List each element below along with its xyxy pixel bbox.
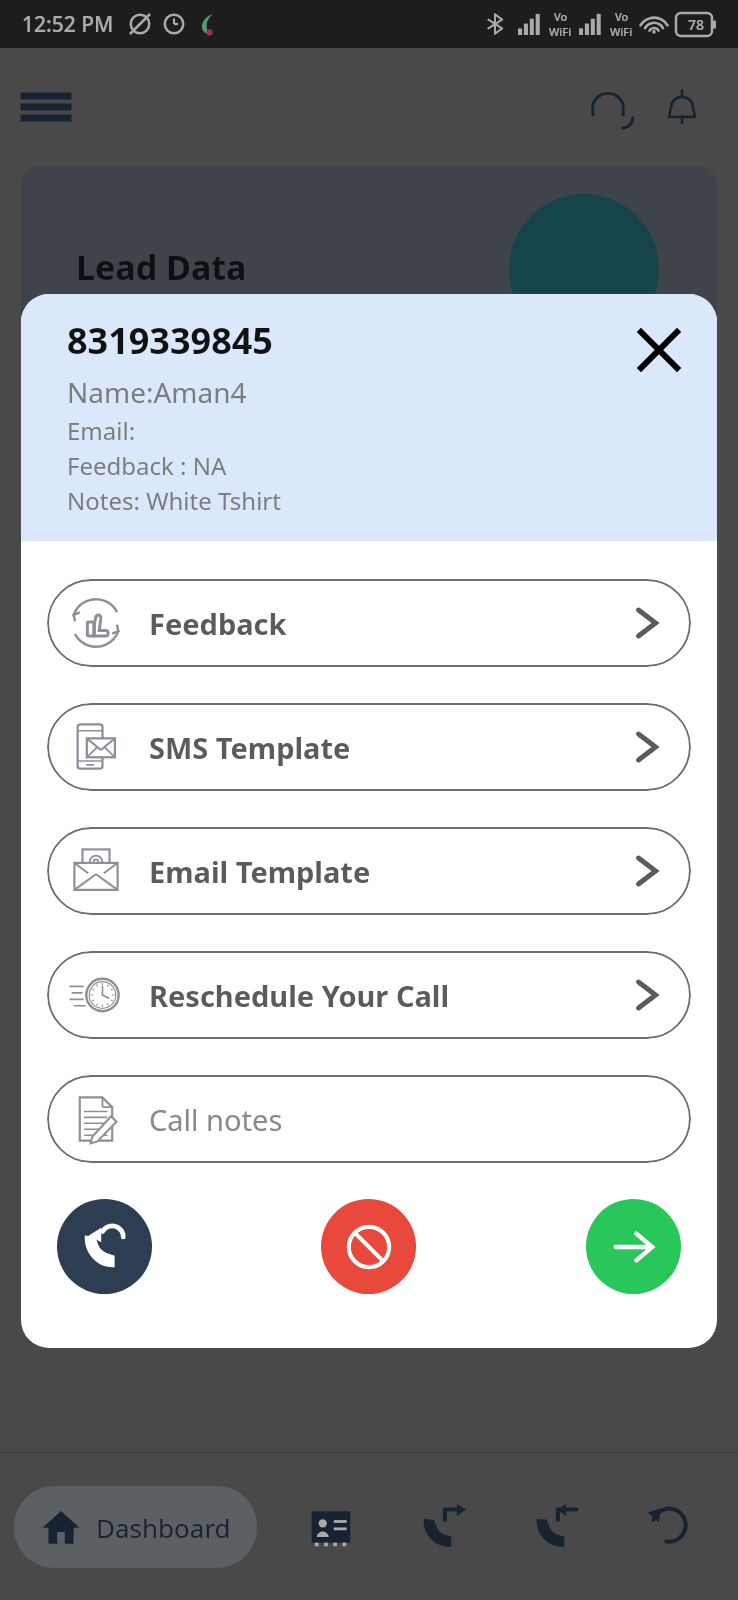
staticText: Vo bbox=[615, 9, 629, 24]
staticText: Name:Aman4 bbox=[67, 373, 247, 411]
button[interactable]: Contacts bbox=[293, 1489, 369, 1565]
button[interactable]: Support bbox=[580, 79, 636, 135]
button[interactable]: Menu bbox=[22, 83, 70, 131]
button[interactable]: Next bbox=[586, 1199, 681, 1294]
button[interactable]: Email Template bbox=[47, 827, 691, 915]
staticText: Feedback bbox=[149, 604, 287, 643]
button[interactable]: Incoming calls bbox=[519, 1489, 595, 1565]
staticText: Call notes bbox=[149, 1100, 283, 1139]
button[interactable]: Outgoing calls bbox=[406, 1489, 482, 1565]
button[interactable]: Reschedule Your Call bbox=[47, 951, 691, 1039]
button[interactable]: SMS Template bbox=[47, 703, 691, 791]
staticText: Email Template bbox=[149, 852, 371, 891]
staticText: Notes: White Tshirt bbox=[67, 484, 281, 517]
button[interactable]: Call notes bbox=[47, 1075, 691, 1163]
staticText: Lead Data bbox=[76, 244, 247, 290]
staticText: Feedback : NA bbox=[67, 449, 227, 482]
staticText: 8319339845 bbox=[67, 316, 273, 365]
staticText: 12:52 PM bbox=[22, 10, 114, 39]
staticText: 78 bbox=[688, 15, 705, 34]
button[interactable]: Call back bbox=[57, 1199, 152, 1294]
button[interactable]: Dashboard bbox=[40, 1506, 231, 1548]
staticText: WiFi bbox=[549, 24, 572, 39]
staticText: Reschedule Your Call bbox=[149, 976, 450, 1015]
button[interactable]: Feedback bbox=[47, 579, 691, 667]
button[interactable]: Call history bbox=[632, 1489, 708, 1565]
button[interactable]: Close bbox=[631, 322, 687, 378]
button[interactable]: Notifications bbox=[654, 79, 710, 135]
staticText: SMS Template bbox=[149, 728, 351, 767]
staticText: Vo bbox=[554, 9, 568, 24]
button[interactable]: Do not call bbox=[321, 1199, 416, 1294]
staticText: Dashboard bbox=[96, 1510, 231, 1545]
staticText: Email: bbox=[67, 414, 136, 447]
staticText: WiFi bbox=[610, 24, 633, 39]
